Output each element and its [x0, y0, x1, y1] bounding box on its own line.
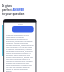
- staticText: Artificial intelligence is the simulatio…: [6, 34, 34, 72]
- staticText: It gives perfect ANSWER to your question: [2, 4, 25, 16]
- button[interactable]: User question message: [12, 26, 34, 33]
- staticText: Today: [18, 23, 23, 25]
